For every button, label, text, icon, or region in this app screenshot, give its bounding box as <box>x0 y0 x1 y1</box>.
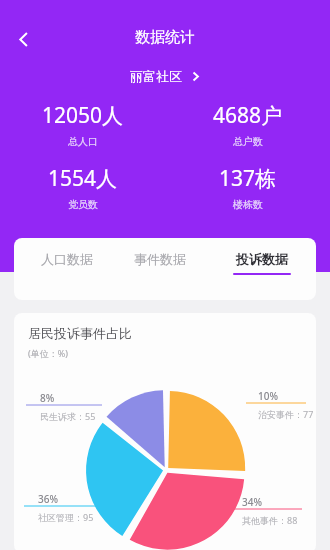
staticText: 1554人 <box>48 164 118 193</box>
button[interactable]: 人口数据 <box>23 251 111 273</box>
staticText: 10% <box>258 389 278 403</box>
staticText: 事件数据 <box>134 251 186 267</box>
button[interactable]: 丽富社区 <box>124 65 207 87</box>
staticText: 4688户 <box>213 101 283 130</box>
staticText: 总户数 <box>233 135 263 148</box>
staticText: 社区管理：95 <box>38 511 94 523</box>
button[interactable]: 4688户 <box>165 101 330 148</box>
staticText: 12050人 <box>42 101 124 130</box>
button[interactable]: 12050人 <box>0 101 165 148</box>
button[interactable]: 137栋 <box>165 164 330 211</box>
staticText: 137栋 <box>219 164 277 193</box>
staticText: 其他事件：88 <box>242 514 298 526</box>
button[interactable]: 投诉数据 <box>218 251 306 275</box>
staticText: 34% <box>242 495 262 509</box>
staticText: (单位：%) <box>28 347 68 359</box>
staticText: 楼栋数 <box>233 198 263 211</box>
staticText: 数据统计 <box>135 28 195 47</box>
button[interactable]: 事件数据 <box>116 251 204 273</box>
staticText: 人口数据 <box>41 251 93 267</box>
staticText: 8% <box>40 391 55 405</box>
staticText: 36% <box>38 492 58 506</box>
staticText: 党员数 <box>68 198 98 211</box>
staticText: 投诉数据 <box>236 251 288 267</box>
staticText: 居民投诉事件占比 <box>28 325 132 341</box>
staticText: 丽富社区 <box>130 68 182 84</box>
button[interactable]: 1554人 <box>0 164 165 211</box>
staticText: 民生诉求：55 <box>40 410 96 422</box>
staticText: 治安事件：77 <box>258 408 314 420</box>
staticText: 总人口 <box>68 135 98 148</box>
button[interactable]: Back <box>4 20 42 58</box>
